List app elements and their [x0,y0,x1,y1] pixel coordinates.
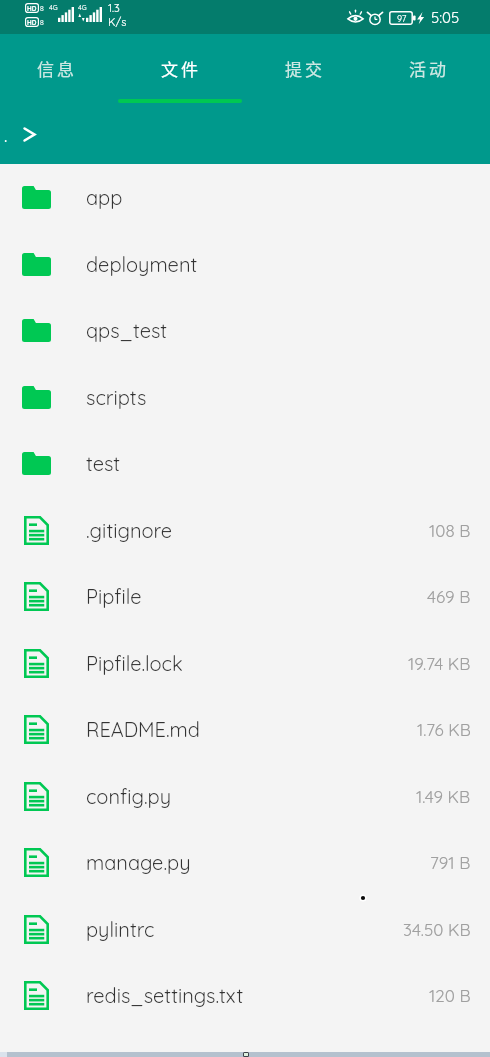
staticText: manage.py [86,850,191,875]
button[interactable]: qps_test [0,297,490,364]
staticText: deployment [86,252,198,277]
staticText: 1.3 [108,1,120,15]
other: Path separator [23,127,36,142]
button[interactable]: 信息 [0,34,117,102]
button[interactable]: README.md [0,696,490,763]
button[interactable]: .gitignore [0,497,490,564]
staticText: redis_settings.txt [86,983,244,1008]
staticText: 19.74 KB [408,653,471,674]
button[interactable]: 文件 [117,34,241,102]
staticText: 文件 [161,56,201,81]
staticText: 活动 [409,56,449,81]
button[interactable]: scripts [0,364,490,431]
other: Alarm [368,11,382,25]
staticText: 4G [78,3,87,12]
button[interactable]: app [0,164,490,231]
staticText: config.py [86,784,172,809]
staticText: 5:05 [431,8,460,27]
staticText: test [86,451,121,476]
staticText: 120 B [429,985,471,1006]
staticText: 8 [40,18,44,27]
staticText: app [86,185,123,210]
button[interactable]: . [0,118,10,153]
staticText: pylintrc [86,917,155,942]
staticText: 791 B [430,852,471,873]
staticText: 信息 [37,56,77,81]
staticText: qps_test [86,318,168,343]
staticText: 1.49 KB [416,786,471,807]
staticText: .gitignore [86,518,173,543]
staticText: 97 [397,13,407,24]
staticText: 469 B [427,586,471,607]
staticText: 4G [49,3,58,12]
staticText: 提交 [285,56,325,81]
button[interactable]: config.py [0,763,490,830]
staticText: 8 [40,4,44,13]
button[interactable]: redis_settings.txt [0,962,490,1029]
staticText: Pipfile [86,584,142,609]
staticText: scripts [86,385,147,410]
staticText: K/s [108,15,127,29]
staticText: HD [27,18,37,26]
staticText: 108 B [429,520,471,541]
staticText: Pipfile.lock [86,651,183,676]
staticText: 1.76 KB [417,719,471,740]
button[interactable]: manage.py [0,829,490,896]
button[interactable]: pylintrc [0,896,490,963]
staticText: HD [27,4,37,12]
button[interactable]: 提交 [241,34,365,102]
button[interactable]: deployment [0,231,490,298]
staticText: . [4,124,8,147]
button[interactable]: Pipfile.lock [0,630,490,697]
button[interactable]: 活动 [365,34,489,102]
other: Eye comfort [347,11,364,25]
staticText: README.md [86,717,200,742]
button[interactable]: test [0,430,490,497]
staticText: 34.50 KB [403,919,471,940]
button[interactable]: Pipfile [0,563,490,630]
